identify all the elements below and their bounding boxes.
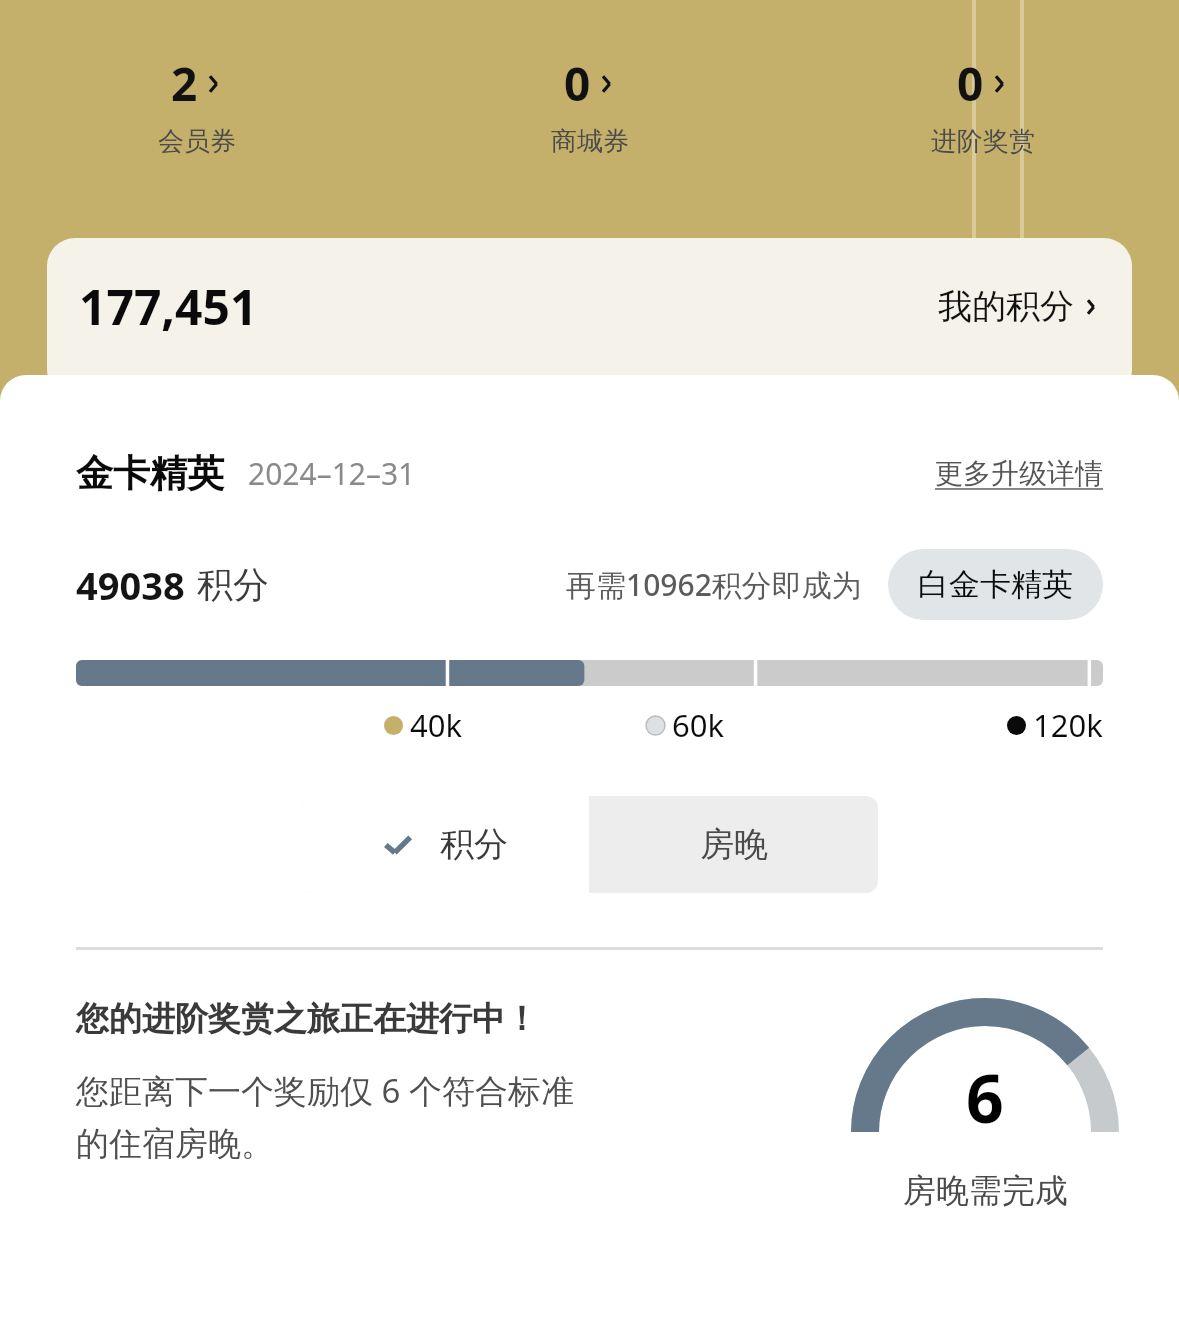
button[interactable]: 177,451	[47, 238, 1132, 398]
staticText: 49038	[76, 559, 185, 611]
staticText: 白金卡精英	[918, 565, 1073, 604]
staticText: 商城券	[551, 125, 629, 158]
button[interactable]: 0	[393, 52, 786, 158]
staticText: 您的进阶奖赏之旅正在进行中！	[76, 998, 538, 1040]
staticText: 金卡精英	[76, 450, 224, 497]
staticText: 我的积分	[938, 285, 1074, 328]
staticText: 您距离下一个奖励仅 6 个符合标准 的住宿房晚。	[76, 1068, 575, 1165]
staticText: 0	[564, 52, 591, 115]
button[interactable]: 积分	[301, 796, 589, 893]
staticText: 6	[966, 1052, 1004, 1142]
staticText: 再需10962积分即成为	[566, 564, 862, 605]
staticText: 会员券	[158, 125, 236, 158]
staticText: 进阶奖赏	[931, 125, 1035, 158]
button[interactable]: 更多升级详情	[935, 456, 1103, 491]
staticText: 0	[957, 52, 984, 115]
staticText: 更多升级详情	[935, 456, 1103, 491]
staticText: 房晚	[700, 823, 768, 866]
staticText: 2024–12–31	[248, 453, 416, 494]
staticText: 积分	[197, 562, 269, 607]
button[interactable]: 白金卡精英	[888, 549, 1103, 620]
staticText: 60k	[672, 704, 725, 746]
staticText: 40k	[410, 704, 463, 746]
staticText: 177,451	[79, 274, 258, 339]
button[interactable]: 房晚	[589, 796, 878, 893]
staticText: 2	[171, 52, 198, 115]
button[interactable]: 0	[786, 52, 1179, 158]
staticText: 积分	[440, 823, 508, 866]
staticText: 房晚需完成	[903, 1170, 1068, 1212]
button[interactable]: 2	[0, 52, 393, 158]
staticText: 120k	[1033, 704, 1103, 746]
